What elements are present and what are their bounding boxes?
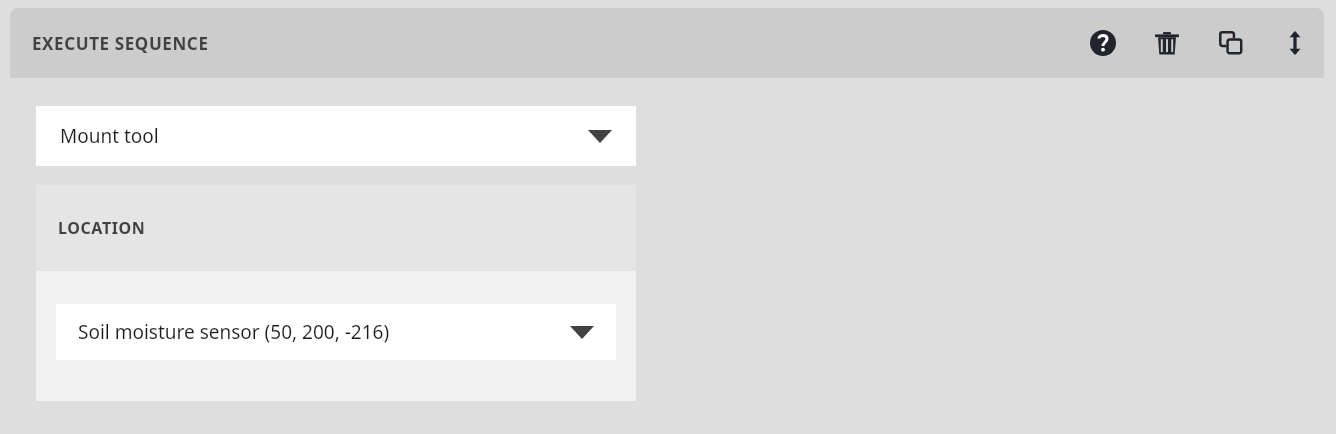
button[interactable]: Resize [1272,20,1318,66]
staticText: EXECUTE SEQUENCE [32,32,209,55]
button[interactable]: Soil moisture sensor (50, 200, -216) [56,304,616,360]
staticText: LOCATION [58,217,146,239]
staticText: Soil moisture sensor (50, 200, -216) [78,319,390,345]
staticText: Mount tool [60,123,159,149]
button[interactable]: Mount tool [36,106,636,166]
button[interactable]: Help [1080,20,1126,66]
button[interactable]: Duplicate [1208,20,1254,66]
button[interactable]: Delete [1144,20,1190,66]
